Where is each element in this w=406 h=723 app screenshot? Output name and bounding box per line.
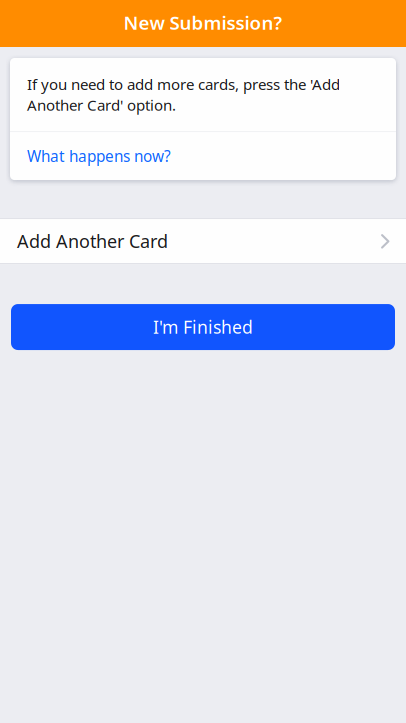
staticText: New Submission? — [123, 10, 282, 35]
button[interactable]: What happens now? — [10, 132, 396, 180]
staticText: Add Another Card — [17, 229, 168, 253]
staticText: I'm Finished — [153, 315, 253, 339]
button[interactable]: Add Another Card — [0, 218, 406, 264]
staticText: If you need to add more cards, press the… — [27, 74, 340, 115]
button[interactable]: I'm Finished — [11, 304, 395, 350]
staticText: What happens now? — [27, 146, 171, 166]
